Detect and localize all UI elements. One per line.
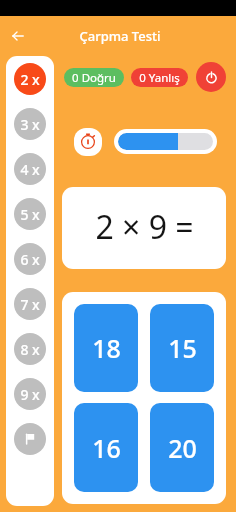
button[interactable]: 6 x <box>14 243 46 275</box>
staticText: 5 x <box>20 205 40 224</box>
button[interactable]: 15 <box>150 304 214 392</box>
staticText: 8 x <box>20 340 40 359</box>
staticText: 20 <box>168 431 197 465</box>
button[interactable]: 18 <box>74 304 138 392</box>
button[interactable]: Report <box>14 423 46 455</box>
staticText: 6 x <box>20 250 40 269</box>
button[interactable]: 3 x <box>14 108 46 140</box>
button[interactable]: 0 Doğru <box>64 68 124 87</box>
staticText: 2 x <box>20 70 40 89</box>
staticText: 16 <box>92 431 121 465</box>
staticText: 4 x <box>20 160 40 179</box>
button[interactable]: Timer <box>74 128 102 156</box>
button[interactable]: 9 x <box>14 378 46 410</box>
staticText: 7 x <box>20 295 40 314</box>
button[interactable]: Restart <box>196 62 226 92</box>
staticText: 15 <box>168 331 197 365</box>
button[interactable]: 5 x <box>14 198 46 230</box>
staticText: 3 x <box>20 115 40 134</box>
staticText: 9 x <box>20 385 40 404</box>
button[interactable]: 20 <box>150 403 214 492</box>
button[interactable]: 16 <box>74 403 138 492</box>
staticText: 2 × 9 = <box>95 205 194 249</box>
button[interactable]: 8 x <box>14 333 46 365</box>
button[interactable]: 4 x <box>14 153 46 185</box>
staticText: 0 Yanlış <box>139 70 180 86</box>
staticText: 0 Doğru <box>72 70 116 86</box>
staticText: Çarpma Testi <box>79 27 161 45</box>
staticText: 18 <box>92 331 121 365</box>
button[interactable]: 2 x <box>14 63 46 95</box>
button[interactable]: Back <box>6 24 30 48</box>
button[interactable]: 7 x <box>14 288 46 320</box>
button[interactable]: 0 Yanlış <box>131 68 188 87</box>
